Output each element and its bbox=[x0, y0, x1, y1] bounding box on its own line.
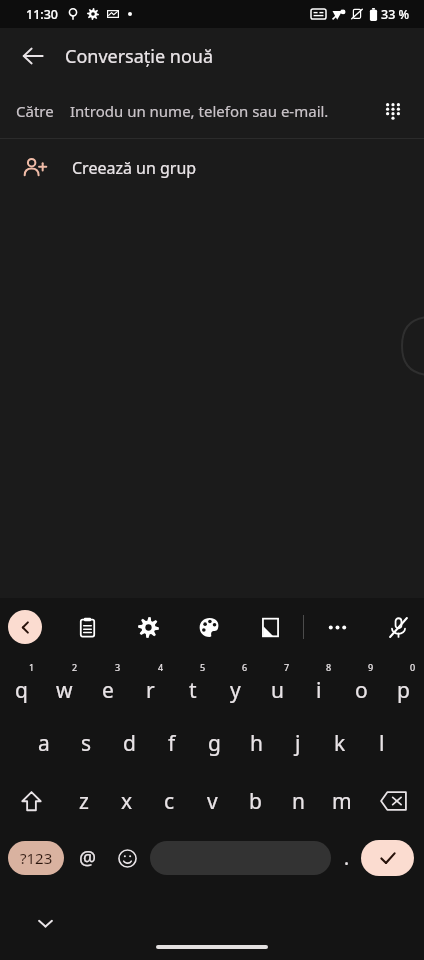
staticText: p bbox=[397, 676, 410, 705]
staticText: Introdu un nume, telefon sau e-mail. bbox=[70, 101, 329, 121]
staticText: d bbox=[123, 729, 136, 758]
staticText: s bbox=[81, 729, 92, 758]
button[interactable]: j bbox=[277, 714, 319, 772]
button[interactable]: Back bbox=[10, 33, 56, 79]
staticText: i bbox=[316, 676, 322, 705]
button[interactable]: m bbox=[320, 772, 363, 830]
staticText: y bbox=[230, 676, 241, 705]
button[interactable]: Shift bbox=[0, 772, 62, 830]
staticText: g bbox=[208, 729, 221, 758]
button[interactable]: z bbox=[62, 772, 105, 830]
button[interactable]: r bbox=[129, 656, 172, 714]
button[interactable]: Backspace bbox=[363, 772, 424, 830]
button[interactable]: Creează un grup bbox=[0, 139, 424, 197]
button[interactable]: x bbox=[105, 772, 148, 830]
staticText: 11:30 bbox=[26, 6, 59, 23]
staticText: l bbox=[379, 729, 385, 758]
button[interactable]: l bbox=[361, 714, 403, 772]
button[interactable]: o bbox=[340, 656, 382, 714]
staticText: t bbox=[189, 676, 197, 705]
staticText: c bbox=[164, 787, 175, 816]
button[interactable]: At symbol bbox=[71, 841, 105, 875]
button[interactable]: More options bbox=[319, 609, 355, 645]
button[interactable]: b bbox=[234, 772, 277, 830]
staticText: j bbox=[295, 729, 301, 758]
button[interactable]: Dial pad bbox=[372, 90, 414, 132]
staticText: 5 bbox=[200, 661, 206, 673]
staticText: v bbox=[207, 787, 218, 816]
staticText: 33 % bbox=[381, 6, 410, 23]
button[interactable]: g bbox=[193, 714, 235, 772]
button[interactable]: w bbox=[43, 656, 86, 714]
button[interactable]: y bbox=[214, 656, 256, 714]
button[interactable]: Keyboard settings bbox=[130, 609, 166, 645]
button[interactable]: t bbox=[172, 656, 214, 714]
staticText: z bbox=[79, 787, 89, 816]
staticText: h bbox=[250, 729, 263, 758]
button[interactable]: a bbox=[22, 714, 65, 772]
staticText: m bbox=[332, 787, 352, 816]
button[interactable]: e bbox=[86, 656, 129, 714]
staticText: r bbox=[146, 676, 155, 705]
button[interactable]: . bbox=[335, 841, 359, 875]
staticText: Conversație nouă bbox=[65, 44, 214, 69]
staticText: o bbox=[355, 676, 368, 705]
staticText: k bbox=[334, 729, 346, 758]
staticText: n bbox=[292, 787, 305, 816]
button[interactable]: f bbox=[151, 714, 193, 772]
staticText: ?123 bbox=[20, 848, 53, 868]
staticText: 4 bbox=[158, 661, 164, 673]
button[interactable]: Resize keyboard bbox=[252, 609, 288, 645]
button[interactable]: Voice input muted bbox=[380, 609, 416, 645]
button[interactable]: Emoji bbox=[110, 841, 144, 875]
staticText: Către bbox=[16, 101, 54, 121]
staticText: 7 bbox=[284, 661, 290, 673]
button[interactable]: n bbox=[277, 772, 320, 830]
button[interactable]: Către bbox=[0, 84, 424, 138]
staticText: a bbox=[38, 729, 50, 758]
button[interactable]: Hide keyboard bbox=[26, 904, 64, 942]
button[interactable]: Clipboard bbox=[69, 609, 105, 645]
staticText: 0 bbox=[410, 661, 416, 673]
staticText: e bbox=[102, 676, 114, 705]
button[interactable]: v bbox=[191, 772, 234, 830]
button[interactable]: Space bbox=[150, 841, 331, 875]
staticText: 3 bbox=[115, 661, 121, 673]
button[interactable]: u bbox=[256, 656, 298, 714]
button[interactable]: i bbox=[298, 656, 340, 714]
staticText: 1 bbox=[29, 661, 35, 673]
staticText: Creează un grup bbox=[72, 157, 197, 179]
staticText: x bbox=[121, 787, 133, 816]
staticText: b bbox=[249, 787, 262, 816]
button[interactable]: Theme bbox=[191, 609, 227, 645]
button[interactable]: k bbox=[319, 714, 361, 772]
button[interactable]: s bbox=[65, 714, 108, 772]
button[interactable]: c bbox=[148, 772, 191, 830]
button[interactable]: q bbox=[0, 656, 43, 714]
staticText: @ bbox=[79, 845, 97, 871]
staticText: . bbox=[344, 845, 350, 871]
staticText: w bbox=[56, 676, 73, 705]
button[interactable]: Enter bbox=[361, 840, 414, 876]
button[interactable]: ?123 bbox=[8, 841, 64, 875]
staticText: 2 bbox=[72, 661, 78, 673]
staticText: 6 bbox=[242, 661, 248, 673]
staticText: 9 bbox=[368, 661, 374, 673]
staticText: u bbox=[271, 676, 284, 705]
staticText: 8 bbox=[326, 661, 332, 673]
button[interactable]: Expand toolbar bbox=[8, 610, 42, 644]
button[interactable]: d bbox=[108, 714, 151, 772]
button[interactable]: p bbox=[382, 656, 424, 714]
staticText: q bbox=[15, 676, 28, 705]
staticText: f bbox=[168, 729, 176, 758]
button[interactable]: h bbox=[235, 714, 277, 772]
